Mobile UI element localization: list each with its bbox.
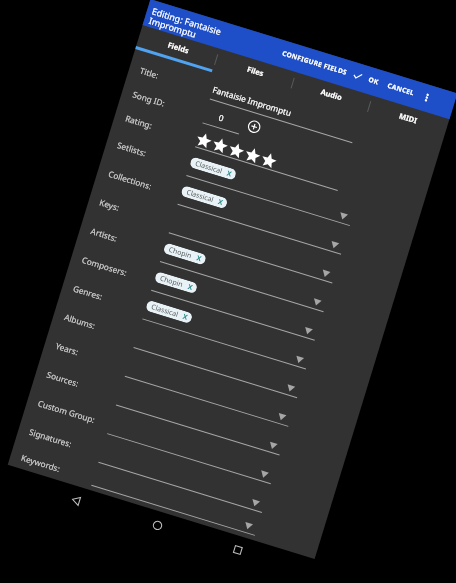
button[interactable]: Recents bbox=[228, 540, 248, 560]
button[interactable]: Title: bbox=[126, 55, 440, 173]
staticText: Keywords: bbox=[20, 452, 61, 474]
button[interactable]: MIDI bbox=[366, 96, 449, 143]
button[interactable]: Signatures: bbox=[15, 413, 330, 536]
button[interactable]: Collections: bbox=[94, 155, 410, 278]
staticText: Years: bbox=[54, 340, 80, 357]
button[interactable]: Song ID: bbox=[119, 79, 433, 197]
staticText: X bbox=[225, 168, 233, 179]
button[interactable]: Custom Group: bbox=[23, 384, 339, 507]
button[interactable]: Chopin bbox=[163, 242, 207, 265]
staticText: CONFIGURE FIELDS bbox=[281, 48, 349, 77]
staticText: Chopin bbox=[167, 245, 193, 261]
button[interactable]: Keywords: bbox=[8, 442, 322, 559]
button[interactable]: Sources: bbox=[32, 356, 348, 479]
staticText: Fields bbox=[167, 39, 191, 55]
staticText: Custom Group: bbox=[37, 397, 97, 425]
staticText: Albums: bbox=[63, 311, 97, 331]
staticText: X bbox=[217, 197, 224, 208]
staticText: Fantaisie Impromptu bbox=[211, 84, 293, 118]
staticText: Chopin bbox=[159, 273, 184, 290]
button[interactable]: Add bbox=[246, 119, 262, 135]
staticText: X bbox=[195, 253, 203, 264]
staticText: MIDI bbox=[398, 110, 419, 126]
button[interactable]: Composers: bbox=[67, 241, 383, 364]
staticText: Title: bbox=[139, 65, 160, 81]
staticText: Signatures: bbox=[28, 426, 73, 449]
button[interactable]: Genres: bbox=[59, 270, 374, 393]
staticText: OK bbox=[367, 75, 380, 87]
staticText: X bbox=[181, 312, 189, 323]
staticText: Rating: bbox=[124, 112, 154, 131]
staticText: CANCEL bbox=[386, 81, 416, 97]
button[interactable]: Setlists: bbox=[103, 126, 418, 249]
button[interactable]: Classical bbox=[189, 156, 237, 181]
button[interactable]: Fields bbox=[135, 25, 220, 73]
button[interactable]: Classical bbox=[145, 300, 193, 324]
button[interactable]: Keys: bbox=[85, 184, 401, 306]
staticText: Setlists: bbox=[116, 139, 148, 158]
staticText: X bbox=[186, 282, 194, 293]
button[interactable]: Files bbox=[213, 49, 296, 96]
staticText: Files bbox=[246, 64, 265, 78]
staticText: Classical bbox=[150, 302, 179, 320]
staticText: Sources: bbox=[45, 369, 80, 389]
button[interactable]: Back bbox=[66, 490, 86, 510]
button[interactable]: CONFIGURE FIELDS bbox=[281, 47, 349, 79]
staticText: Classical bbox=[194, 159, 223, 177]
staticText: Song ID: bbox=[131, 88, 167, 109]
button[interactable]: Rating: bbox=[111, 102, 426, 220]
staticText: Editing: Fantaisie Impromptu bbox=[147, 4, 223, 48]
button[interactable]: More options bbox=[419, 90, 434, 105]
button[interactable]: Artists: bbox=[76, 212, 392, 335]
staticText: Genres: bbox=[72, 282, 104, 302]
button[interactable]: Home bbox=[147, 515, 167, 535]
staticText: 0 bbox=[217, 112, 225, 124]
button[interactable]: Accept bbox=[351, 69, 364, 83]
staticText: Keys: bbox=[98, 196, 122, 213]
staticText: Artists: bbox=[89, 225, 119, 244]
button[interactable]: Albums: bbox=[50, 298, 366, 421]
button[interactable]: CANCEL bbox=[386, 79, 416, 99]
button[interactable]: OK bbox=[367, 73, 381, 89]
button[interactable]: Audio bbox=[289, 72, 373, 120]
staticText: Composers: bbox=[81, 254, 129, 278]
button[interactable]: Classical bbox=[180, 185, 228, 209]
staticText: Collections: bbox=[107, 168, 153, 191]
staticText: Classical bbox=[185, 187, 215, 205]
button[interactable]: Years: bbox=[41, 327, 357, 450]
button[interactable]: Chopin bbox=[154, 271, 198, 294]
staticText: Audio bbox=[319, 86, 343, 102]
